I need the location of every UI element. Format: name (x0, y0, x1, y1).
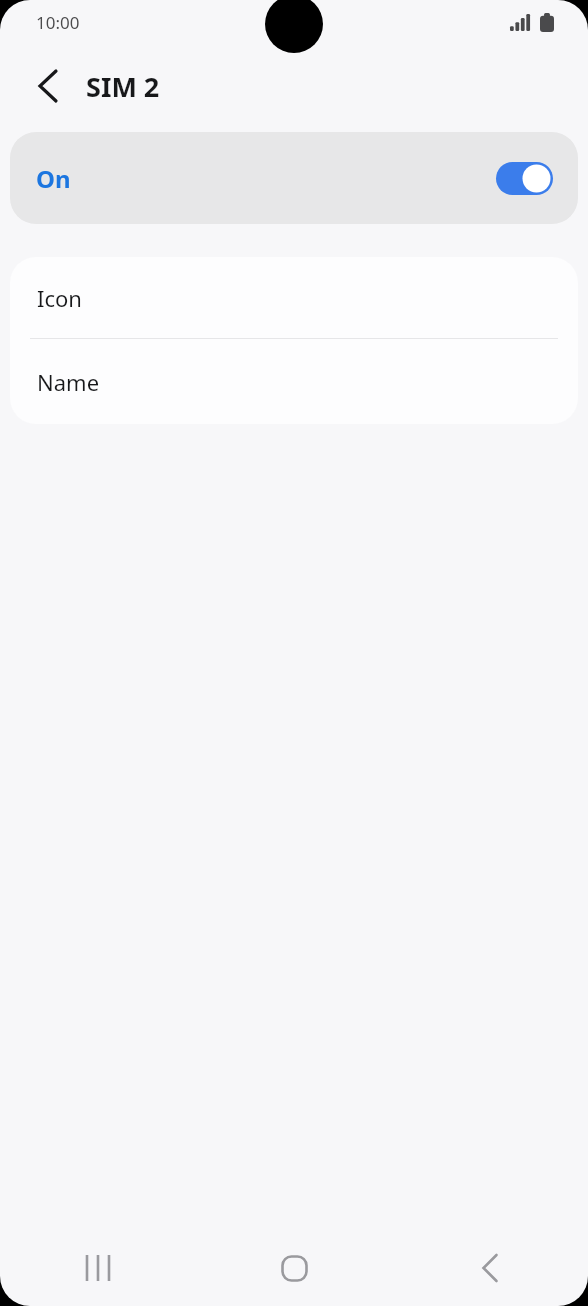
staticText: 10:00 (36, 11, 80, 34)
button[interactable]: On (10, 132, 578, 224)
button[interactable]: Icon (10, 257, 578, 338)
button[interactable]: Name (10, 339, 578, 424)
staticText: Icon (37, 283, 82, 313)
staticText: Name (37, 367, 100, 397)
staticText: On (36, 162, 71, 195)
button[interactable]: Back (392, 1230, 588, 1306)
button[interactable]: Back (22, 60, 74, 112)
button[interactable]: Recent apps (0, 1230, 196, 1306)
button[interactable]: Home (196, 1230, 392, 1306)
staticText: SIM 2 (86, 68, 160, 105)
